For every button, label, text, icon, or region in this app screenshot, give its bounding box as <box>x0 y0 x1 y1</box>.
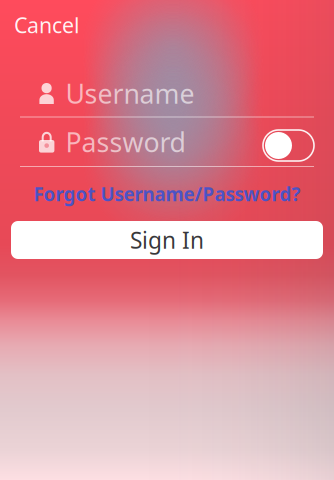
staticText: Cancel <box>14 11 80 39</box>
staticText: Forgot Username/Password? <box>33 182 300 206</box>
button[interactable]: Sign In <box>11 221 323 259</box>
button[interactable]: Username <box>39 70 314 117</box>
button[interactable]: Forgot Username/Password? <box>27 183 307 205</box>
button[interactable]: Password <box>39 118 254 166</box>
staticText: Password <box>65 124 185 160</box>
button[interactable]: Cancel <box>14 10 104 40</box>
staticText: Username <box>65 76 194 111</box>
staticText: Sign In <box>130 225 204 255</box>
button[interactable]: Show password <box>263 130 314 161</box>
